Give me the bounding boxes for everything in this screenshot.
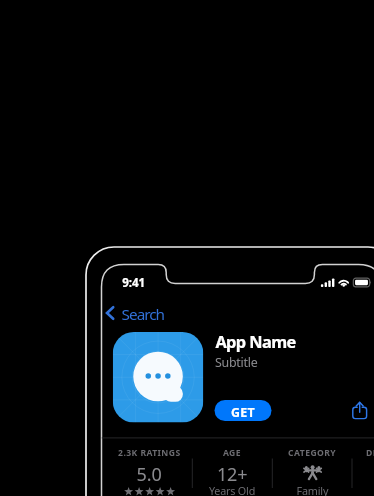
- button[interactable]: App Store product page preview: [0, 0, 374, 496]
